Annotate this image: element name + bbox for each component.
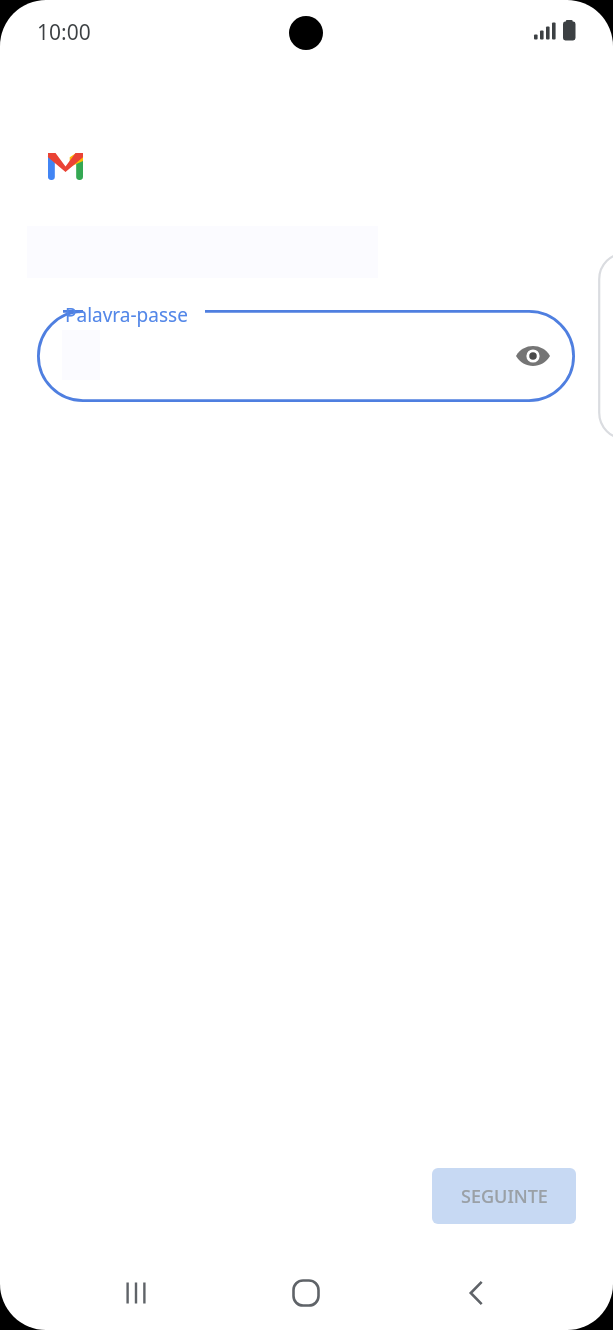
button[interactable]: Mostrar palavra-passe bbox=[509, 332, 557, 380]
button[interactable]: Voltar bbox=[437, 1258, 517, 1328]
button[interactable]: Início bbox=[266, 1258, 346, 1328]
staticText: Palavra-passe bbox=[65, 302, 188, 328]
staticText: 10:00 bbox=[37, 18, 91, 47]
staticText: SEGUINTE bbox=[461, 1184, 548, 1209]
button[interactable]: SEGUINTE bbox=[432, 1168, 576, 1224]
button[interactable]: Mostrar palavra-passe bbox=[37, 310, 575, 402]
button[interactable]: Recentes bbox=[96, 1258, 176, 1328]
